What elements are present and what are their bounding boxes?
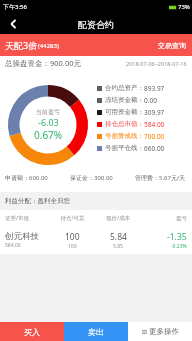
staticText: 冻结资金额： bbox=[105, 96, 144, 104]
staticText: 卖出 bbox=[88, 327, 104, 337]
staticText: 现价/成本 bbox=[95, 214, 141, 222]
button[interactable]: 买入 bbox=[0, 322, 64, 341]
staticText: 660.00 bbox=[144, 144, 165, 153]
staticText: 配资合约 bbox=[78, 19, 114, 30]
staticText: 584.00 bbox=[5, 242, 21, 249]
staticText: 0.00 bbox=[144, 96, 157, 105]
staticText: 利益分配：盈利全归您 bbox=[5, 197, 70, 205]
button[interactable]: 更多操作 bbox=[128, 322, 192, 341]
staticText: 2018-07-06~2018-07-16 bbox=[126, 60, 187, 67]
staticText: -6.03 bbox=[38, 116, 59, 128]
staticText: 号损平仓线： bbox=[105, 144, 144, 152]
staticText: 584.00 bbox=[144, 120, 165, 129]
staticText: 天配3倍 bbox=[5, 39, 38, 51]
staticText: 保证金：300.00 bbox=[70, 174, 113, 182]
staticText: 73% bbox=[178, 3, 190, 11]
staticText: 100 bbox=[65, 231, 80, 243]
staticText: (44283) bbox=[38, 42, 59, 50]
staticText: 创元科技 bbox=[5, 231, 39, 242]
staticText: 管理费：5.67元/天 bbox=[135, 174, 186, 182]
staticText: 证券/市值 bbox=[5, 214, 50, 222]
staticText: 合约总资产： bbox=[105, 84, 144, 92]
button[interactable]: 卖出 bbox=[64, 322, 128, 341]
button[interactable]: 交易查询 bbox=[158, 41, 192, 50]
button[interactable]: 创元科技 bbox=[0, 226, 192, 254]
staticText: 100 bbox=[68, 243, 77, 250]
staticText: 买入 bbox=[24, 327, 40, 337]
staticText: 可用资金额： bbox=[105, 108, 144, 116]
button[interactable]: Back bbox=[0, 14, 26, 34]
staticText: -0.23% bbox=[171, 243, 187, 250]
staticText: 持仓/可卖 bbox=[50, 214, 95, 222]
staticText: 更多操作 bbox=[149, 327, 179, 336]
staticText: 申请额：600.00 bbox=[5, 174, 48, 182]
staticText: 0.67% bbox=[34, 128, 63, 142]
staticText: 700.00 bbox=[144, 132, 165, 141]
staticText: 309.97 bbox=[144, 108, 165, 117]
staticText: 893.97 bbox=[144, 84, 165, 93]
staticText: 5.85 bbox=[113, 243, 123, 250]
staticText: 持仓总市值： bbox=[105, 120, 144, 128]
staticText: 号损警戒线： bbox=[105, 132, 144, 140]
staticText: 当前盈亏 bbox=[36, 108, 60, 116]
staticText: 5.84 bbox=[110, 231, 127, 243]
staticText: 下午3:56 bbox=[3, 3, 27, 11]
staticText: 总操盘资金：900.00元 bbox=[5, 58, 81, 68]
staticText: 盈亏 bbox=[141, 215, 187, 222]
staticText: -1.35 bbox=[167, 231, 187, 243]
